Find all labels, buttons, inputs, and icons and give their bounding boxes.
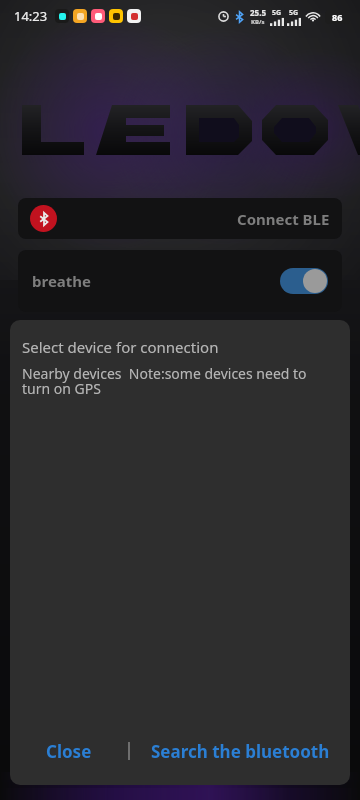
staticText: 14:23 bbox=[14, 7, 48, 25]
staticText: Connect BLE bbox=[237, 209, 330, 229]
staticText: breathe bbox=[32, 271, 92, 291]
button[interactable]: Search the bluetooth bbox=[130, 723, 350, 779]
staticText: 5G bbox=[272, 8, 282, 18]
staticText: 5G bbox=[289, 8, 299, 18]
staticText: Search the bluetooth bbox=[151, 740, 330, 763]
staticText: KB/s bbox=[251, 18, 265, 26]
staticText: 86 bbox=[332, 11, 343, 23]
staticText: Nearby devices Note:some devices need to… bbox=[22, 364, 338, 398]
button[interactable]: Connect BLE bbox=[18, 198, 342, 239]
staticText: 25.5 bbox=[250, 7, 266, 18]
staticText: Select device for connection bbox=[22, 337, 219, 357]
staticText: Close bbox=[46, 740, 92, 763]
button[interactable]: breathe toggle bbox=[280, 268, 328, 294]
button[interactable]: Close bbox=[10, 723, 128, 779]
